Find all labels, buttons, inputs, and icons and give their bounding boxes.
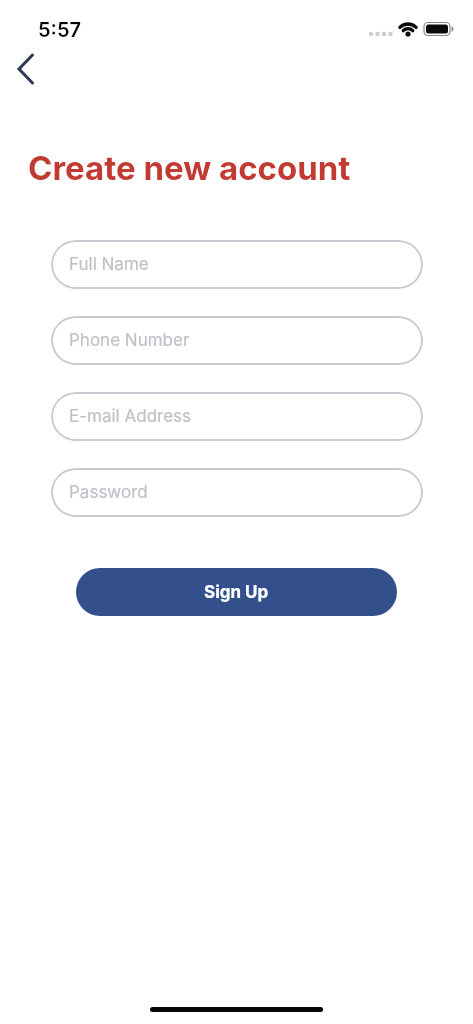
- button[interactable]: Phone Number: [51, 316, 423, 365]
- staticText: Create new account: [28, 148, 351, 188]
- staticText: Full Name: [69, 254, 149, 275]
- staticText: Sign Up: [204, 582, 269, 603]
- staticText: Phone Number: [69, 330, 190, 351]
- staticText: E-mail Address: [69, 406, 192, 427]
- button[interactable]: E-mail Address: [51, 392, 423, 441]
- button[interactable]: Password: [51, 468, 423, 517]
- button[interactable]: [6, 50, 50, 90]
- staticText: Password: [69, 482, 148, 503]
- staticText: 5:57: [38, 18, 82, 42]
- button[interactable]: Sign Up: [76, 568, 397, 616]
- button[interactable]: Full Name: [51, 240, 423, 289]
